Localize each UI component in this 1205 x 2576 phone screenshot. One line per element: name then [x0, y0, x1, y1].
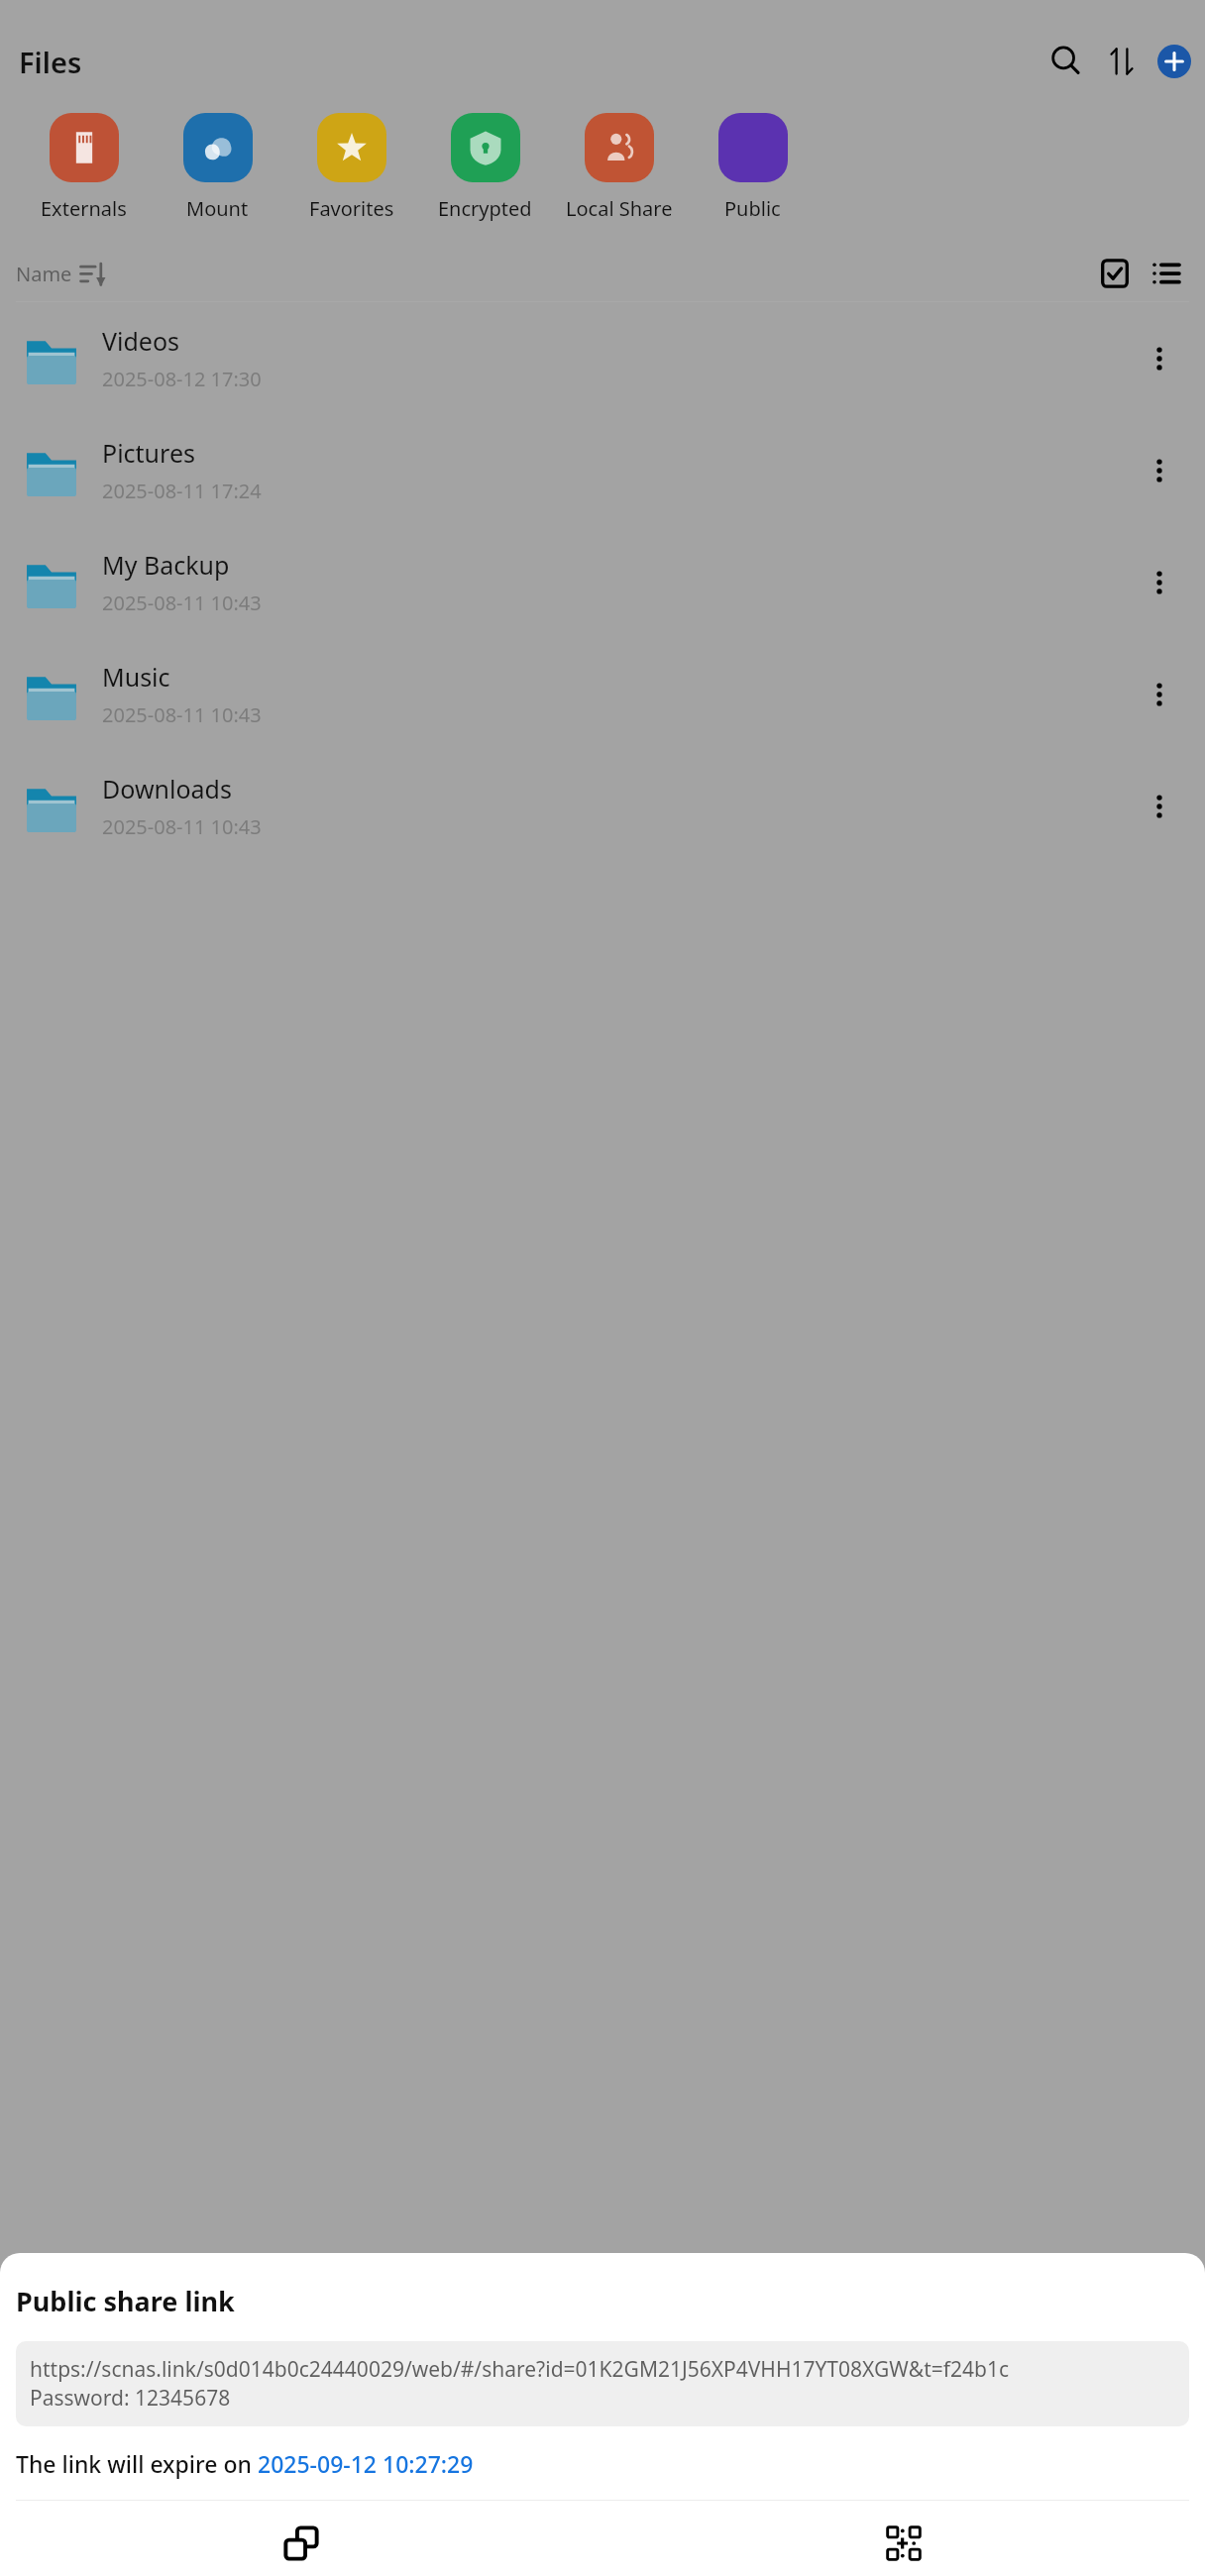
button[interactable]: Local Share — [552, 113, 686, 222]
staticText: My Backup — [102, 548, 230, 582]
staticText: Externals — [41, 195, 127, 222]
staticText: 2025-08-12 17:30 — [102, 366, 262, 392]
button[interactable]: Select — [1094, 253, 1136, 294]
button[interactable]: More options — [1138, 785, 1181, 828]
staticText: https://scnas.link/s0d014b0c24440029/web… — [30, 2355, 1009, 2384]
staticText: 2025-08-11 10:43 — [102, 590, 262, 616]
button[interactable]: Externals — [17, 113, 151, 222]
button[interactable]: More options — [1138, 561, 1181, 604]
button[interactable]: Sort — [1102, 42, 1142, 81]
staticText: Password: 12345678 — [30, 2384, 231, 2413]
button[interactable]: Public — [686, 113, 820, 222]
button[interactable]: Name — [16, 261, 106, 287]
button[interactable]: Downloads — [0, 750, 1205, 862]
staticText: Downloads — [102, 772, 232, 805]
staticText: Favorites — [309, 195, 394, 222]
button[interactable]: Pictures — [0, 414, 1205, 526]
button[interactable]: My Backup — [0, 526, 1205, 638]
staticText: 2025-08-11 17:24 — [102, 478, 262, 504]
button[interactable]: Encrypted — [418, 113, 552, 222]
button[interactable]: More options — [1138, 337, 1181, 380]
button[interactable]: Favorites — [284, 113, 418, 222]
button[interactable]: More options — [1138, 673, 1181, 716]
staticText: Videos — [102, 324, 180, 358]
button[interactable]: Videos — [0, 302, 1205, 414]
button[interactable]: Search — [1046, 42, 1086, 81]
staticText: 2025-08-11 10:43 — [102, 701, 262, 728]
staticText: The link will expire on 2025-09-12 10:27… — [16, 2448, 474, 2479]
staticText: 2025-08-11 10:43 — [102, 813, 262, 840]
staticText: Name — [16, 261, 72, 287]
staticText: Public share link — [16, 2283, 235, 2319]
button[interactable]: Add — [1157, 45, 1191, 78]
button[interactable]: Copy link — [0, 2501, 602, 2576]
staticText: Local Share — [566, 195, 673, 222]
staticText: Public — [724, 195, 781, 222]
button[interactable]: Music — [0, 638, 1205, 750]
button[interactable]: View mode — [1146, 253, 1187, 294]
button[interactable]: Generate QR code — [602, 2501, 1205, 2576]
staticText: Music — [102, 660, 170, 694]
staticText: Pictures — [102, 436, 195, 470]
staticText: Files — [19, 43, 82, 81]
staticText: Encrypted — [438, 195, 532, 222]
button[interactable]: More options — [1138, 449, 1181, 492]
button[interactable]: Mount — [151, 113, 284, 222]
staticText: Mount — [186, 195, 249, 222]
